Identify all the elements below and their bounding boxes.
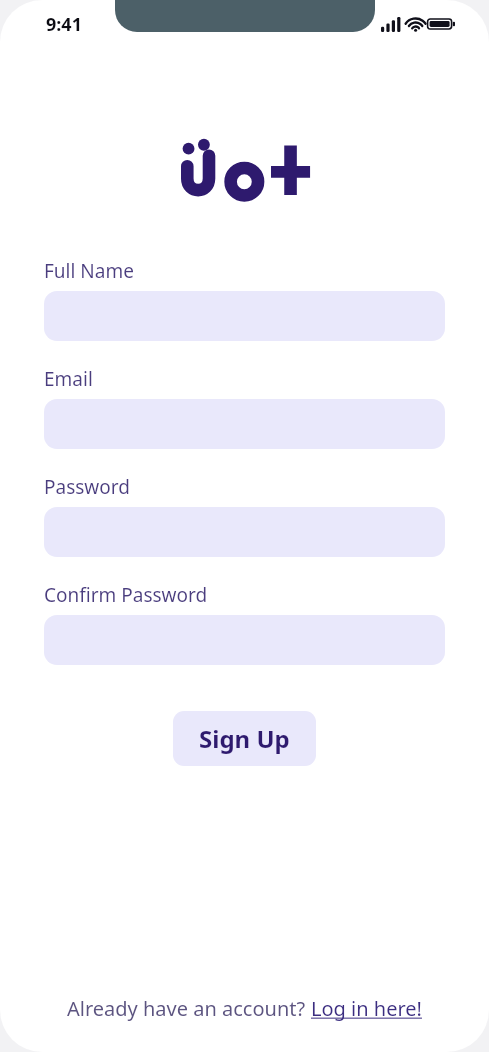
staticText: Confirm Password [44,582,208,608]
button[interactable]: Log in here! [311,995,422,1022]
staticText: 9:41 [46,12,82,37]
staticText: Password [44,474,130,500]
staticText: Log in here! [311,995,422,1022]
staticText: Email [44,366,93,392]
staticText: Already have an account? [67,995,311,1022]
button[interactable]: Sign Up [173,711,316,766]
staticText: Full Name [44,258,134,284]
staticText: Sign Up [199,722,290,755]
